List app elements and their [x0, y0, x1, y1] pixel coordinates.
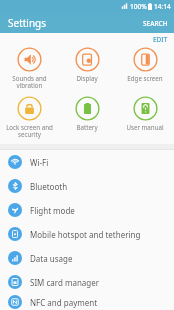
button[interactable]: EDIT: [147, 33, 174, 45]
staticText: Flight mode: [30, 205, 75, 216]
staticText: SIM card manager: [30, 277, 100, 288]
staticText: User manual: [126, 123, 164, 131]
button[interactable]: NFC and payment: [0, 294, 174, 310]
staticText: Edge screen: [127, 74, 163, 82]
staticText: Bluetooth: [30, 181, 68, 192]
staticText: 14:14: [154, 2, 171, 11]
button[interactable]: Sounds and vibration: [0, 45, 58, 92]
button[interactable]: User manual: [116, 94, 174, 133]
button[interactable]: Battery: [58, 94, 116, 133]
staticText: Mobile hotspot and tethering: [30, 229, 141, 240]
staticText: NFC and payment: [30, 297, 98, 308]
button[interactable]: SEARCH: [137, 16, 174, 31]
staticText: Data usage: [30, 253, 73, 264]
button[interactable]: Data usage: [0, 246, 174, 270]
staticText: SEARCH: [143, 19, 168, 28]
button[interactable]: Lock screen and security: [0, 94, 58, 141]
staticText: Battery: [76, 123, 98, 131]
staticText: Settings: [8, 16, 47, 30]
staticText: EDIT: [153, 35, 168, 43]
button[interactable]: Display: [58, 45, 116, 84]
staticText: Lock screen and security: [6, 123, 53, 139]
staticText: Display: [76, 74, 98, 82]
button[interactable]: Edge screen: [116, 45, 174, 84]
button[interactable]: Bluetooth: [0, 174, 174, 198]
button[interactable]: SIM card manager: [0, 270, 174, 294]
staticText: 100%: [130, 2, 147, 11]
staticText: Wi-Fi: [30, 157, 49, 168]
button[interactable]: Mobile hotspot and tethering: [0, 222, 174, 246]
button[interactable]: Flight mode: [0, 198, 174, 222]
button[interactable]: Wi-Fi: [0, 150, 174, 174]
staticText: Sounds and vibration: [12, 74, 47, 90]
